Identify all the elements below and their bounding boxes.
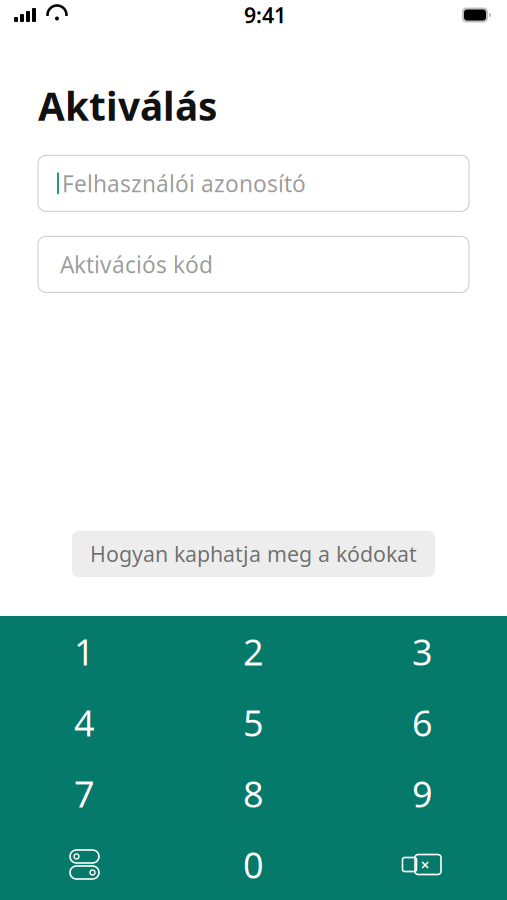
button[interactable]: 8: [169, 758, 338, 829]
staticText: 9:41: [244, 1, 286, 29]
staticText: Aktiválás: [38, 80, 217, 131]
button[interactable]: Aktivációs kód: [38, 236, 469, 292]
button[interactable]: 4: [0, 687, 169, 758]
staticText: 6: [412, 699, 433, 746]
staticText: 5: [243, 699, 264, 746]
button[interactable]: 9: [338, 758, 507, 829]
button[interactable]: 1: [0, 616, 169, 687]
button[interactable]: Felhasználói azonosító: [38, 155, 469, 211]
button[interactable]: 2: [169, 616, 338, 687]
staticText: 0: [243, 841, 264, 888]
staticText: 3: [412, 628, 433, 675]
staticText: Hogyan kaphatja meg a kódokat: [90, 540, 417, 568]
staticText: 4: [74, 699, 95, 746]
button[interactable]: 3: [338, 616, 507, 687]
staticText: 9: [412, 770, 433, 817]
button[interactable]: Delete: [338, 829, 507, 900]
staticText: 7: [74, 770, 95, 817]
button[interactable]: 7: [0, 758, 169, 829]
staticText: Felhasználói azonosító: [62, 168, 306, 198]
button[interactable]: 0: [169, 829, 338, 900]
button[interactable]: 5: [169, 687, 338, 758]
button[interactable]: Hogyan kaphatja meg a kódokat: [72, 531, 435, 577]
staticText: 1: [74, 628, 95, 675]
staticText: ×: [420, 854, 429, 875]
button[interactable]: Switch input mode: [0, 829, 169, 900]
staticText: 2: [243, 628, 264, 675]
staticText: 8: [243, 770, 264, 817]
staticText: Aktivációs kód: [60, 249, 213, 279]
button[interactable]: 6: [338, 687, 507, 758]
